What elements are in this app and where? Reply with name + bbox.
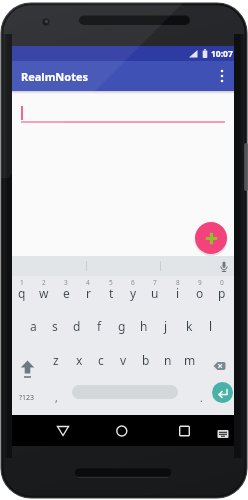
staticText: s [52,318,58,334]
button[interactable] [211,422,234,442]
staticText: ?123 [19,393,35,403]
button[interactable] [14,345,44,380]
staticText: g [118,318,126,334]
button[interactable]: i [167,276,189,310]
button[interactable]: u [144,276,166,310]
staticText: k [186,318,193,334]
staticText: r [86,285,91,301]
staticText: w [39,285,49,301]
button[interactable]: z [45,343,67,377]
staticText: q [18,285,26,301]
button[interactable]: r [77,276,99,310]
button[interactable]: o [189,276,211,310]
staticText: d [73,318,81,334]
staticText: 3 [64,278,68,287]
button[interactable]: x [68,343,90,377]
staticText: 9 [198,278,202,287]
staticText: u [151,285,159,301]
staticText: 6 [131,278,135,287]
button[interactable] [212,382,233,403]
button[interactable]: c [90,343,112,377]
staticText: v [120,352,127,368]
staticText: 7 [153,278,157,287]
button[interactable] [39,422,63,446]
staticText: p [218,285,226,301]
button[interactable]: b [135,343,157,377]
staticText: 10:07 [211,48,233,60]
staticText: 2 [42,278,46,287]
button[interactable] [208,345,234,380]
staticText: e [63,285,70,301]
button[interactable]: a [22,309,44,343]
button[interactable] [109,419,134,443]
staticText: j [164,318,168,334]
staticText: z [53,352,59,368]
button[interactable]: g [111,309,133,343]
button[interactable]: v [112,343,134,377]
staticText: a [30,318,37,334]
staticText: 5 [109,278,113,287]
button[interactable]: w [33,276,55,310]
button[interactable]: d [66,309,88,343]
button[interactable]: t [100,276,122,310]
button[interactable]: j [155,309,177,343]
button[interactable]: k [178,309,200,343]
staticText: i [176,285,180,301]
button[interactable]: f [88,309,110,343]
button[interactable]: h [133,309,155,343]
staticText: . [200,391,203,405]
button[interactable]: , [45,380,67,415]
staticText: f [97,318,102,334]
staticText: 1 [20,278,24,287]
staticText: 0 [220,278,224,287]
button[interactable] [172,419,197,443]
staticText: , [55,391,58,405]
button[interactable]: n [157,343,179,377]
staticText: RealmNotes [21,69,89,84]
button[interactable] [72,385,178,399]
button[interactable] [195,222,227,254]
staticText: h [140,318,148,334]
button[interactable]: p [211,276,233,310]
staticText: b [142,352,150,368]
button[interactable]: y [122,276,144,310]
button[interactable]: e [55,276,77,310]
staticText: o [196,285,204,301]
button[interactable]: l [200,309,222,343]
staticText: l [209,318,213,334]
button[interactable]: . [190,380,212,415]
button[interactable]: s [44,309,66,343]
button[interactable] [213,61,231,91]
staticText: c [98,352,104,368]
staticText: x [76,352,83,368]
staticText: 8 [176,278,180,287]
button[interactable]: m [179,343,201,377]
button[interactable]: q [11,276,33,310]
staticText: n [164,352,172,368]
staticText: 4 [86,278,90,287]
staticText: y [130,285,137,301]
staticText: m [184,352,196,368]
staticText: t [109,285,114,301]
button[interactable]: ?123 [12,380,42,415]
